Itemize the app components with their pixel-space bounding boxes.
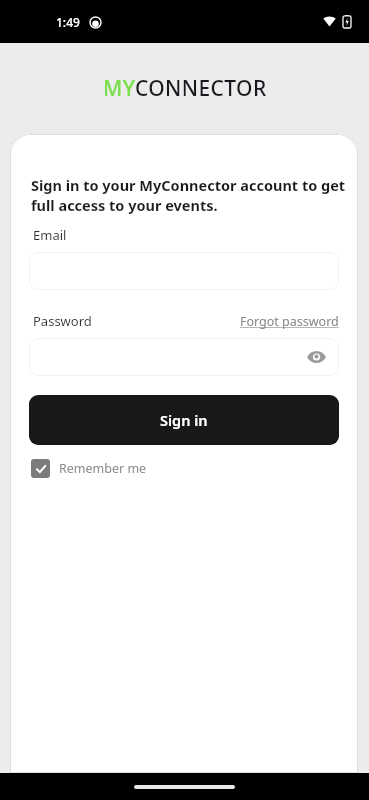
staticText: Password — [33, 312, 92, 330]
staticText: Remember me — [59, 460, 147, 477]
button[interactable]: Remember me — [31, 459, 147, 478]
button[interactable]: Forgot password — [240, 313, 339, 330]
button[interactable] — [29, 252, 339, 290]
staticText: Sign in — [160, 410, 208, 430]
button[interactable]: Sign in — [29, 395, 339, 445]
staticText: MYCONNECTOR — [103, 74, 267, 103]
staticText: Forgot password — [240, 313, 339, 330]
button[interactable]: Show password — [305, 346, 327, 368]
button[interactable]: Show password — [29, 338, 339, 376]
staticText: Email — [33, 226, 67, 244]
staticText: Sign in to your MyConnector account to g… — [31, 175, 346, 215]
staticText: 1:49 — [56, 14, 80, 30]
